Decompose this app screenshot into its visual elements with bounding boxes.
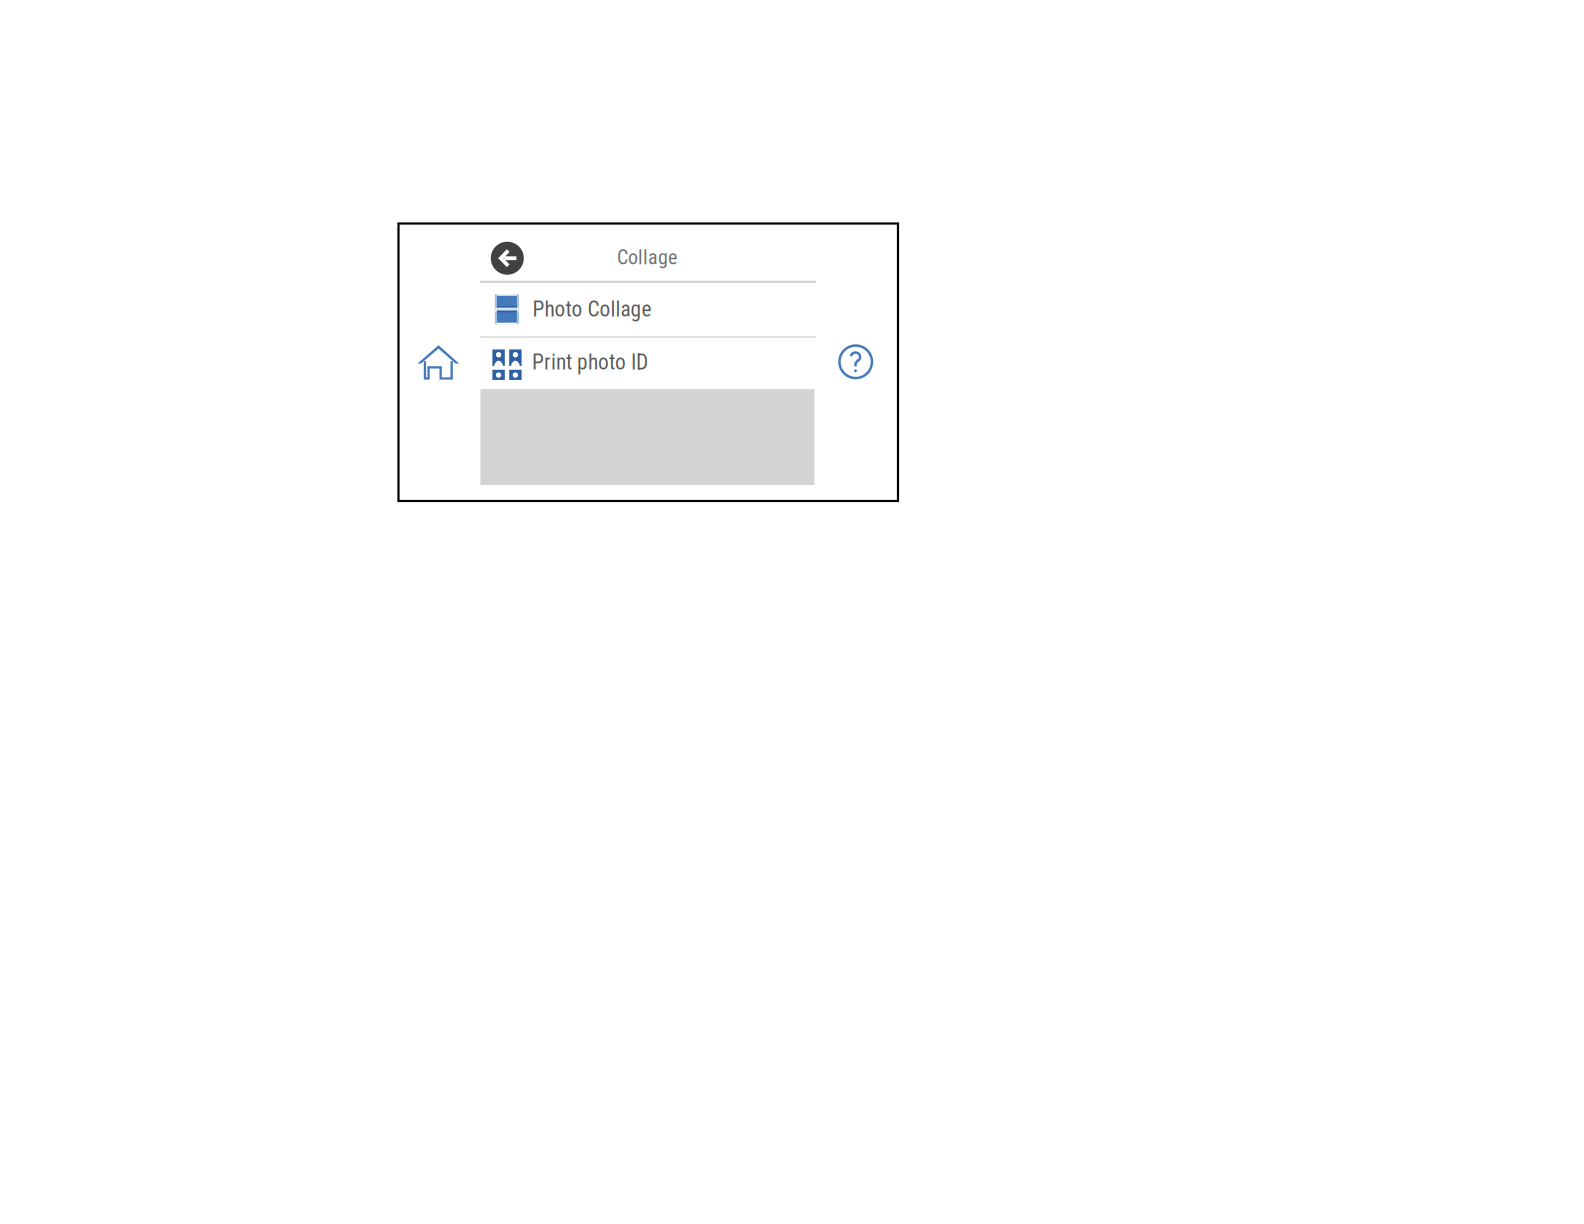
button[interactable]: Photo Collage (480, 283, 816, 336)
button[interactable]: Back (491, 242, 524, 275)
button[interactable]: Help (839, 345, 873, 379)
staticText: Photo Collage (532, 297, 651, 322)
staticText: Print photo ID (532, 350, 648, 375)
staticText: Collage (617, 246, 677, 269)
button[interactable]: Print photo ID (480, 338, 816, 389)
button[interactable]: Home (417, 345, 459, 381)
